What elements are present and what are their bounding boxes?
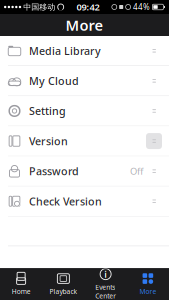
staticText: Setting	[29, 104, 66, 118]
staticText: Off	[130, 165, 143, 177]
button[interactable]: Check Version	[0, 186, 169, 216]
staticText: 44%	[133, 2, 150, 12]
staticText: Media Library	[29, 44, 101, 58]
button[interactable]: Password	[0, 156, 169, 186]
staticText: i	[104, 268, 107, 280]
staticText: More	[65, 15, 103, 35]
staticText: Version	[29, 134, 68, 148]
staticText: Events Center	[95, 283, 116, 300]
button[interactable]: Version	[0, 126, 169, 156]
button[interactable]: Setting	[0, 96, 169, 126]
button[interactable]: Media Library	[0, 36, 169, 65]
staticText: 09:42	[76, 1, 99, 13]
staticText: Playback	[49, 287, 77, 296]
button[interactable]: More	[127, 268, 169, 300]
staticText: Check Version	[29, 194, 102, 208]
button[interactable]: Events Center	[84, 268, 127, 300]
button[interactable]: My Cloud	[0, 66, 169, 96]
staticText: More	[139, 287, 156, 296]
button[interactable]: Home	[0, 268, 42, 300]
staticText: 中国移动	[23, 2, 55, 12]
staticText: Home	[12, 287, 31, 296]
button[interactable]: Playback	[42, 268, 84, 300]
staticText: My Cloud	[29, 74, 79, 88]
staticText: Password	[29, 164, 79, 178]
